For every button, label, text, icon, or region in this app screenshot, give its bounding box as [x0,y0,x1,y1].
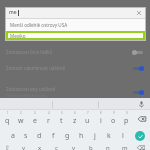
button[interactable]: 6 [68,110,81,127]
button[interactable]: Menší odlehlé ostrovy USA [5,19,146,30]
staticText: 7 [87,111,89,115]
button[interactable]: l [116,127,130,144]
button[interactable]: Zobrazovat dny událostí [0,83,150,101]
staticText: 6 [74,111,76,115]
button[interactable]: s [19,127,32,144]
button[interactable]: a [6,127,19,144]
button[interactable]: d [32,127,46,144]
button[interactable]: c [48,144,65,150]
staticText: s [24,131,28,141]
button[interactable]: g [60,127,74,144]
button[interactable]: 9 [107,110,120,127]
button[interactable]: Zobrazovat čísla řádků [0,44,150,60]
button[interactable]: 8 [94,110,107,127]
button[interactable]: j [88,127,102,144]
button[interactable]: f [46,127,60,144]
staticText: Zobrazovat čísla řádků [6,49,53,55]
staticText: w [18,116,24,126]
staticText: ⌫ [137,144,146,150]
staticText: a [11,131,15,141]
staticText: t [60,116,63,126]
staticText: x [38,144,42,150]
button[interactable]: x [32,144,48,150]
button[interactable]: Zobrazit odemknuté události [0,60,150,76]
button[interactable]: 1 [0,110,14,127]
staticText: 1 [7,111,9,115]
button[interactable]: 7 [81,110,94,127]
staticText: p [124,116,129,126]
staticText: 2 [20,111,22,115]
button[interactable]: 0 [120,110,133,127]
staticText: 9 [113,111,115,115]
button[interactable]: 3 [28,110,42,127]
staticText: u [85,116,90,126]
button[interactable]: b [82,144,99,150]
staticText: o [111,116,116,126]
button[interactable]: Done [130,127,150,144]
staticText: Zobrazovat dny událostí [6,86,56,92]
button[interactable]: Clear text [134,8,143,17]
button[interactable]: h [74,127,88,144]
staticText: b [89,144,93,150]
staticText: 8 [100,111,102,115]
button[interactable]: me [5,7,146,18]
staticText: 0 [126,111,128,115]
staticText: k [107,131,111,141]
button[interactable]: Backspace [133,110,150,127]
staticText: c [55,144,58,150]
staticText: Menší odlehlé ostrovy USA [10,22,68,28]
button[interactable]: y [16,144,32,150]
button[interactable]: Toggle on [132,88,144,96]
button[interactable]: 4 [42,110,55,127]
button[interactable]: 2 [14,110,28,127]
button[interactable]: Voice input [137,100,146,109]
button[interactable]: v [65,144,82,150]
staticText: r [47,116,50,126]
staticText: y [22,144,26,150]
staticText: Mexiko [10,33,26,39]
staticText: v [72,144,76,150]
staticText: d [37,131,42,141]
button[interactable]: Toggle off [132,48,144,56]
button[interactable]: k [102,127,116,144]
staticText: Zobrazit odemknuté události [6,65,66,71]
staticText: m [122,144,128,150]
button[interactable]: m [116,144,133,150]
button[interactable]: n [99,144,116,150]
staticText: 4 [48,111,50,115]
button[interactable]: 5 [55,110,68,127]
button[interactable]: Mexiko [6,31,145,40]
staticText: i [100,116,102,126]
staticText: g [65,131,70,141]
button[interactable]: ⌫ [133,144,150,150]
staticText: 3 [34,111,36,115]
staticText: q [5,116,10,126]
staticText: j [94,131,96,141]
button[interactable]: Toggle on [132,64,144,72]
staticText: 5 [61,111,63,115]
staticText: e [33,116,37,126]
button[interactable]: ⇧ [0,144,16,150]
staticText: ⇧ [5,144,11,150]
staticText: f [52,131,55,141]
staticText: me [9,9,17,16]
staticText: z [73,116,77,126]
staticText: h [79,131,84,141]
staticText: l [122,131,124,141]
staticText: n [106,144,110,150]
